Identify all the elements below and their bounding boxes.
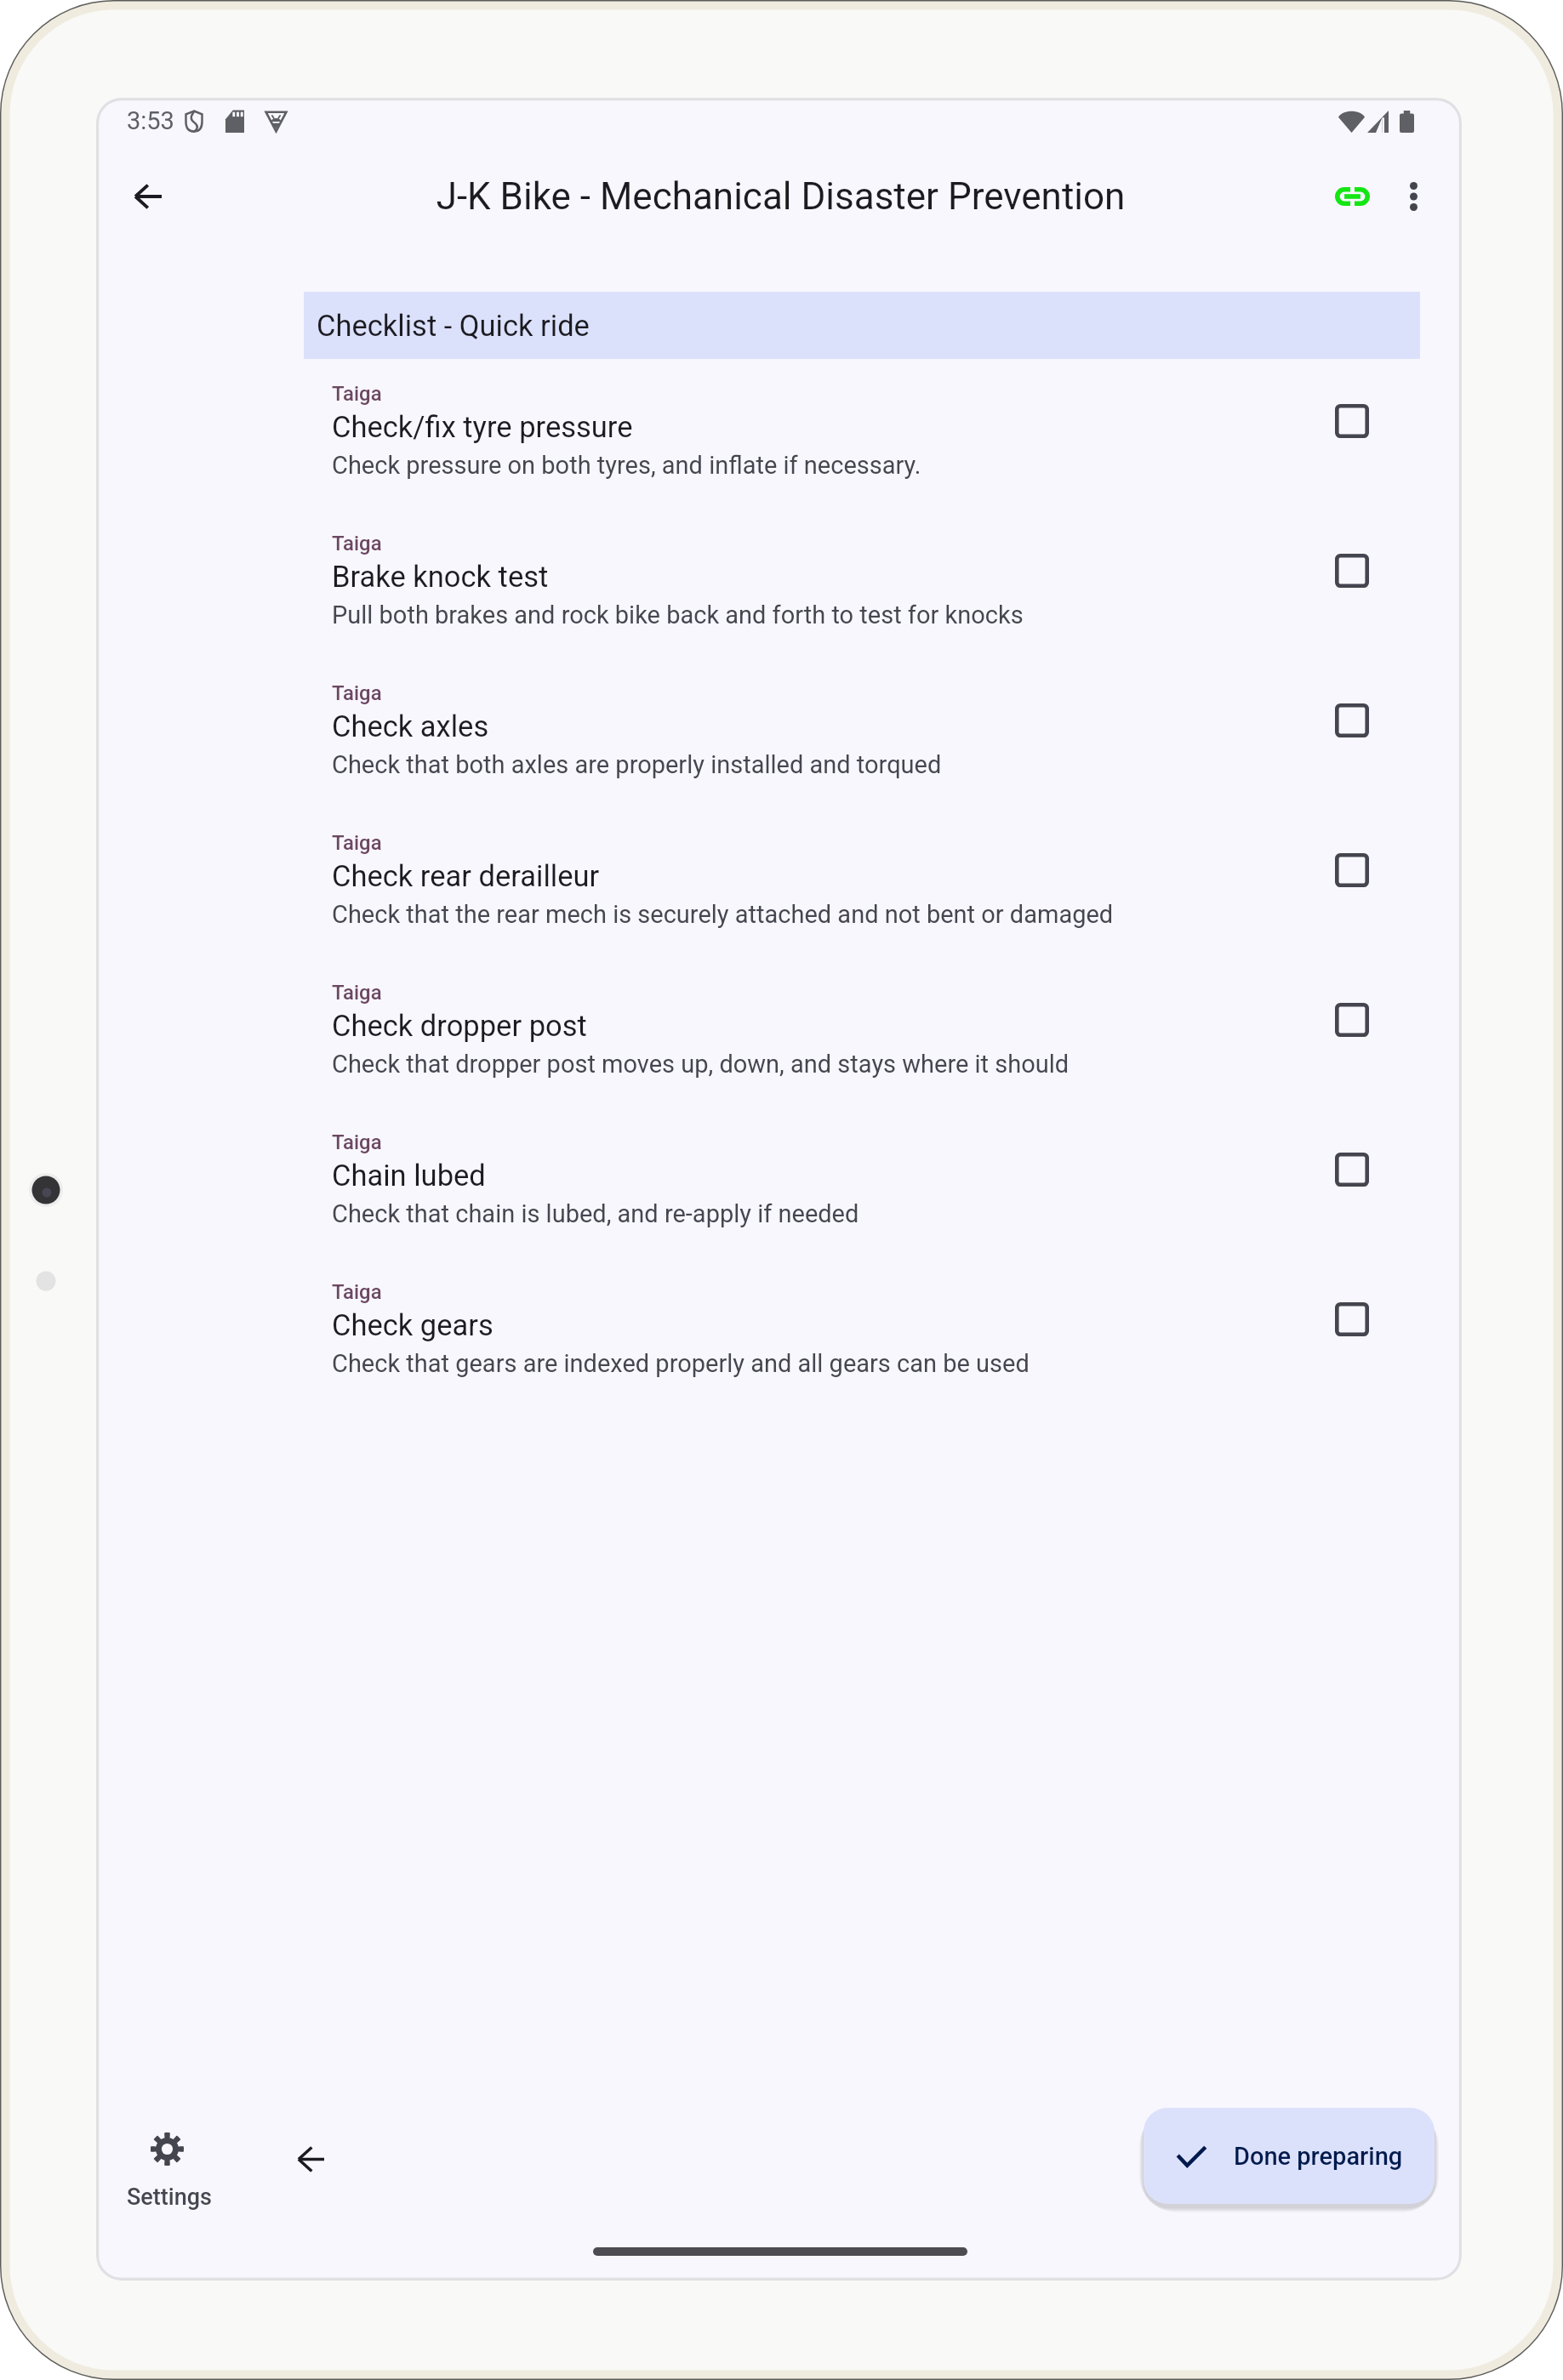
staticText: Taiga	[332, 532, 382, 555]
staticText: Settings	[127, 2184, 212, 2211]
button[interactable]: Taiga	[304, 1245, 1420, 1395]
button[interactable]: Back	[120, 168, 175, 224]
button[interactable]: Taiga	[304, 796, 1420, 946]
staticText: Done preparing	[1234, 2142, 1403, 2171]
staticText: 3:53	[127, 106, 174, 135]
button[interactable]: Taiga	[304, 497, 1420, 646]
button[interactable]: Mark Chain lubed done	[1315, 1132, 1389, 1207]
button[interactable]: Mark Check dropper post done	[1315, 982, 1389, 1057]
staticText: Taiga	[332, 1280, 382, 1304]
staticText: Check that both axles are properly insta…	[332, 750, 942, 779]
staticText: Check that chain is lubed, and re-apply …	[332, 1199, 859, 1228]
button[interactable]: Done preparing	[1144, 2108, 1435, 2204]
staticText: Taiga	[332, 831, 382, 855]
staticText: Checklist - Quick ride	[317, 309, 590, 343]
button[interactable]: Mark Check axles done	[1315, 683, 1389, 758]
button[interactable]: Mark Check/fix tyre pressure done	[1315, 384, 1389, 458]
staticText: Chain lubed	[332, 1159, 486, 1193]
staticText: Check dropper post	[332, 1009, 587, 1043]
staticText: Brake knock test	[332, 560, 549, 594]
staticText: Check/fix tyre pressure	[332, 410, 633, 444]
button[interactable]: Mark Check rear derailleur done	[1315, 833, 1389, 908]
button[interactable]: Copy link	[1325, 168, 1380, 224]
staticText: Taiga	[332, 681, 382, 705]
staticText: Check pressure on both tyres, and inflat…	[332, 451, 921, 480]
button[interactable]: Taiga	[304, 347, 1420, 497]
staticText: Taiga	[332, 1130, 382, 1154]
staticText: Check axles	[332, 709, 489, 743]
staticText: J-K Bike - Mechanical Disaster Preventio…	[98, 174, 1462, 219]
staticText: Taiga	[332, 981, 382, 1005]
button[interactable]: Mark Brake knock test done	[1315, 533, 1389, 608]
button[interactable]: Taiga	[304, 946, 1420, 1096]
button[interactable]: Taiga	[304, 1096, 1420, 1245]
staticText: Check that the rear mech is securely att…	[332, 900, 1114, 929]
button[interactable]: More options	[1386, 168, 1441, 224]
staticText: Check that gears are indexed properly an…	[332, 1349, 1030, 1378]
staticText: Check that dropper post moves up, down, …	[332, 1050, 1070, 1079]
staticText: Check rear derailleur	[332, 859, 600, 893]
button[interactable]: Settings	[103, 2117, 239, 2219]
button[interactable]: Checklist - Quick ride	[304, 292, 1420, 359]
staticText: Check gears	[332, 1308, 493, 1342]
staticText: Taiga	[332, 382, 382, 406]
staticText: Pull both brakes and rock bike back and …	[332, 601, 1024, 629]
button[interactable]: Taiga	[304, 646, 1420, 796]
button[interactable]: Mark Check gears done	[1315, 1282, 1389, 1357]
button[interactable]: Navigate back	[282, 2132, 338, 2187]
